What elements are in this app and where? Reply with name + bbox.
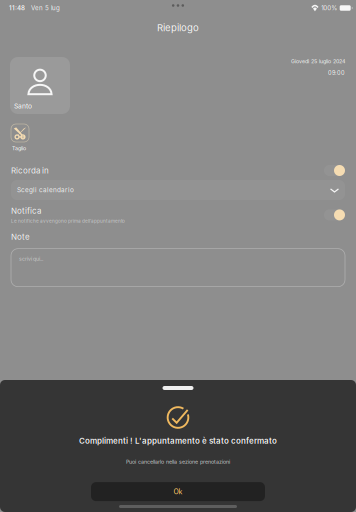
staticText: 09:00 xyxy=(328,69,345,76)
staticText: Taglio xyxy=(12,145,26,151)
staticText: Complimenti ! L'appuntamento è stato con… xyxy=(79,436,277,446)
button[interactable]: Taglio xyxy=(11,124,29,151)
button[interactable]: Ok xyxy=(91,482,265,501)
staticText: Le notifiche avvengono prima dell'appunt… xyxy=(11,218,125,224)
staticText: 11:48 xyxy=(9,4,25,12)
button[interactable]: scrivi qui... xyxy=(11,249,345,287)
staticText: Puoi cancellarlo nella sezione prenotazi… xyxy=(126,459,230,465)
staticText: Ven 5 lug xyxy=(25,4,60,12)
staticText: Note xyxy=(11,232,30,242)
staticText: Giovedì 25 luglio 2024 xyxy=(291,58,345,64)
staticText: Scegli calendario xyxy=(17,186,74,194)
staticText: scrivi qui... xyxy=(19,256,43,262)
staticText: Ricorda in xyxy=(11,166,49,175)
staticText: 100% xyxy=(319,4,337,12)
button[interactable]: Attiva xyxy=(324,165,345,176)
staticText: Ok xyxy=(173,487,182,496)
staticText: Santo xyxy=(14,102,32,110)
button[interactable]: Santo xyxy=(10,57,70,114)
button[interactable]: Attiva xyxy=(324,209,345,220)
button[interactable]: Scegli calendario xyxy=(11,180,345,200)
staticText: Riepilogo xyxy=(157,22,199,34)
staticText: Notifica xyxy=(11,206,41,216)
